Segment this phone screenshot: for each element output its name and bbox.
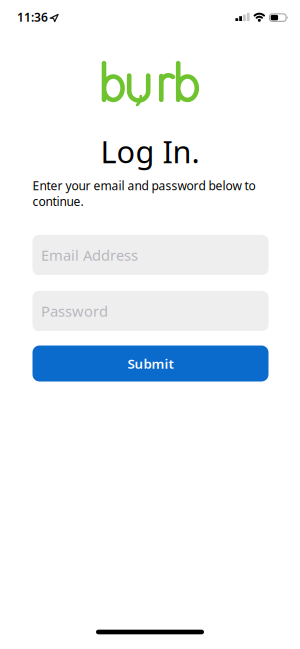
staticText: Submit — [127, 355, 173, 372]
staticText: 11:36 — [17, 9, 48, 25]
staticText: Enter your email and password below to — [32, 178, 255, 193]
button[interactable]: Email Address — [32, 235, 268, 275]
staticText: Email Address — [41, 245, 138, 265]
button[interactable]: Password — [32, 291, 268, 331]
staticText: continue. — [32, 193, 83, 209]
staticText: Password — [41, 301, 108, 321]
button[interactable]: Submit — [32, 345, 268, 381]
staticText: Log In. — [100, 131, 199, 172]
